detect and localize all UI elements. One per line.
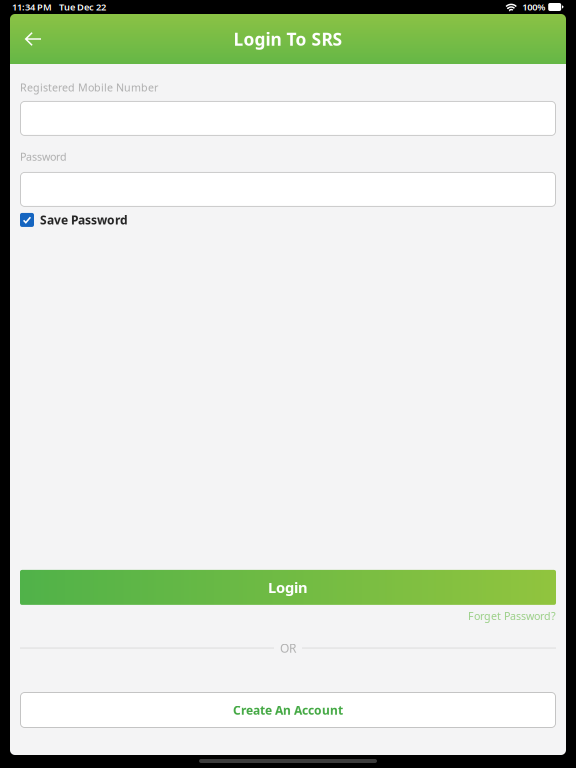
button[interactable]: Back: [10, 14, 56, 64]
staticText: Create An Account: [233, 702, 343, 718]
staticText: Registered Mobile Number: [20, 80, 158, 95]
staticText: 100%: [522, 1, 545, 13]
staticText: Forget Password?: [468, 609, 556, 623]
staticText: Password: [20, 150, 67, 164]
button[interactable]: Login: [20, 570, 556, 605]
staticText: Login: [268, 578, 308, 597]
staticText: Save Password: [40, 212, 128, 228]
staticText: Login To SRS: [233, 27, 342, 50]
button[interactable]: Create An Account: [20, 692, 556, 728]
button[interactable]: Save Password: [20, 211, 556, 229]
staticText: 11:34 PM: [12, 1, 52, 13]
button[interactable]: Forget Password?: [20, 609, 556, 623]
staticText: OR: [280, 640, 296, 656]
staticText: Tue Dec 22: [59, 1, 106, 13]
